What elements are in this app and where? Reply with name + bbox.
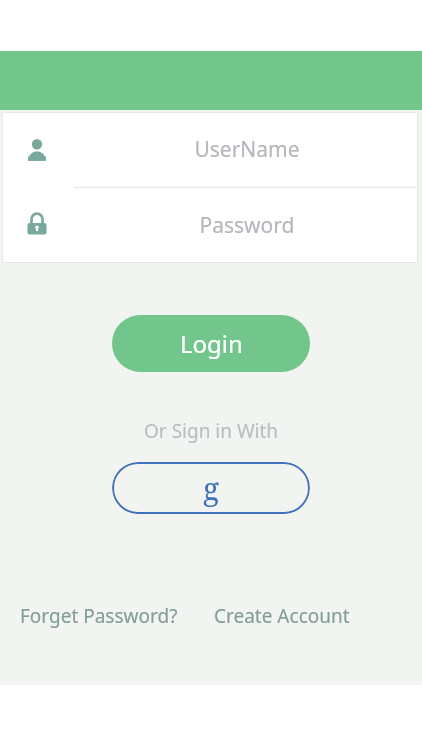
button[interactable]: Sign in with Google <box>112 462 310 514</box>
staticText: UserName <box>76 135 418 164</box>
button[interactable]: Login <box>112 315 310 372</box>
other: Password <box>25 212 49 236</box>
staticText: Create Account <box>214 603 350 629</box>
staticText: Forget Password? <box>20 603 178 629</box>
button[interactable]: Forget Password? <box>18 599 180 633</box>
staticText: g <box>203 468 220 509</box>
button[interactable]: Create Account <box>212 599 352 633</box>
staticText: Password <box>76 211 418 240</box>
staticText: Or Sign in With <box>144 418 279 444</box>
button[interactable]: User name <box>2 112 418 187</box>
staticText: Login <box>180 327 243 360</box>
button[interactable]: Password <box>2 188 418 263</box>
other: User name <box>25 138 49 162</box>
